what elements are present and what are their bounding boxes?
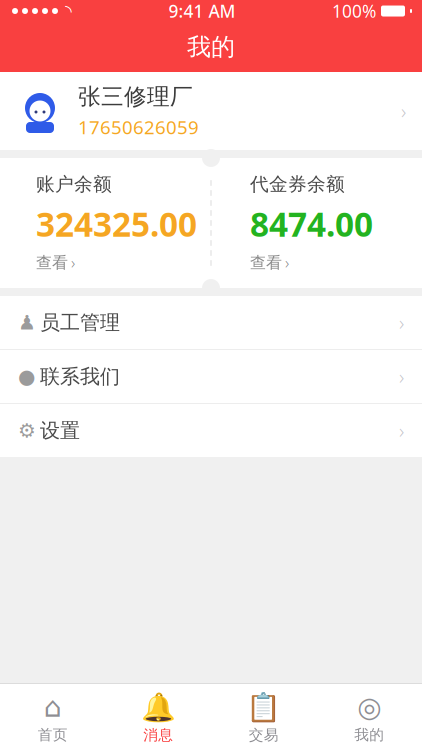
button[interactable]: ● <box>0 350 422 403</box>
staticText: 消息 <box>143 726 173 744</box>
button[interactable]: 张三修理厂 <box>0 72 422 150</box>
staticText: 🔔 <box>141 691 176 723</box>
staticText: › <box>399 363 404 390</box>
staticText: › <box>401 98 406 124</box>
staticText: 查看 <box>250 253 282 272</box>
staticText: 交易 <box>249 726 279 744</box>
staticText: 17650626059 <box>78 114 199 139</box>
staticText: ⚙ <box>18 419 36 442</box>
staticText: 查看 <box>36 253 68 272</box>
staticText: 100% <box>332 0 376 22</box>
staticText: 设置 <box>40 418 80 443</box>
staticText: 📋 <box>246 691 281 723</box>
button[interactable]: ◎ <box>316 684 422 750</box>
button[interactable]: 🔔 <box>105 684 211 750</box>
staticText: 代金券余额 <box>250 173 345 196</box>
staticText: 联系我们 <box>40 364 120 389</box>
button[interactable]: ♟ <box>0 296 422 349</box>
button[interactable]: ⌂ <box>0 684 105 750</box>
button[interactable]: ⚙ <box>0 404 422 457</box>
staticText: ◎ <box>357 691 381 723</box>
staticText: 首页 <box>38 726 68 744</box>
staticText: › <box>285 252 289 273</box>
staticText: › <box>71 252 75 273</box>
staticText: 9:41 AM <box>168 0 235 22</box>
button[interactable]: 📋 <box>211 684 316 750</box>
staticText: › <box>399 309 404 336</box>
staticText: 员工管理 <box>40 310 120 335</box>
staticText: 8474.00 <box>250 202 373 246</box>
staticText: ♟ <box>18 311 36 334</box>
staticText: ● <box>18 365 35 388</box>
staticText: ⌂ <box>44 691 62 723</box>
staticText: ◝ <box>65 1 72 21</box>
staticText: 我的 <box>354 726 384 744</box>
staticText: 张三修理厂 <box>78 83 193 110</box>
staticText: 324325.00 <box>36 202 197 246</box>
staticText: › <box>399 417 404 444</box>
staticText: 账户余额 <box>36 173 112 196</box>
staticText: 我的 <box>187 32 235 62</box>
button[interactable]: 代金券余额 <box>250 173 422 273</box>
button[interactable]: 账户余额 <box>36 173 204 273</box>
